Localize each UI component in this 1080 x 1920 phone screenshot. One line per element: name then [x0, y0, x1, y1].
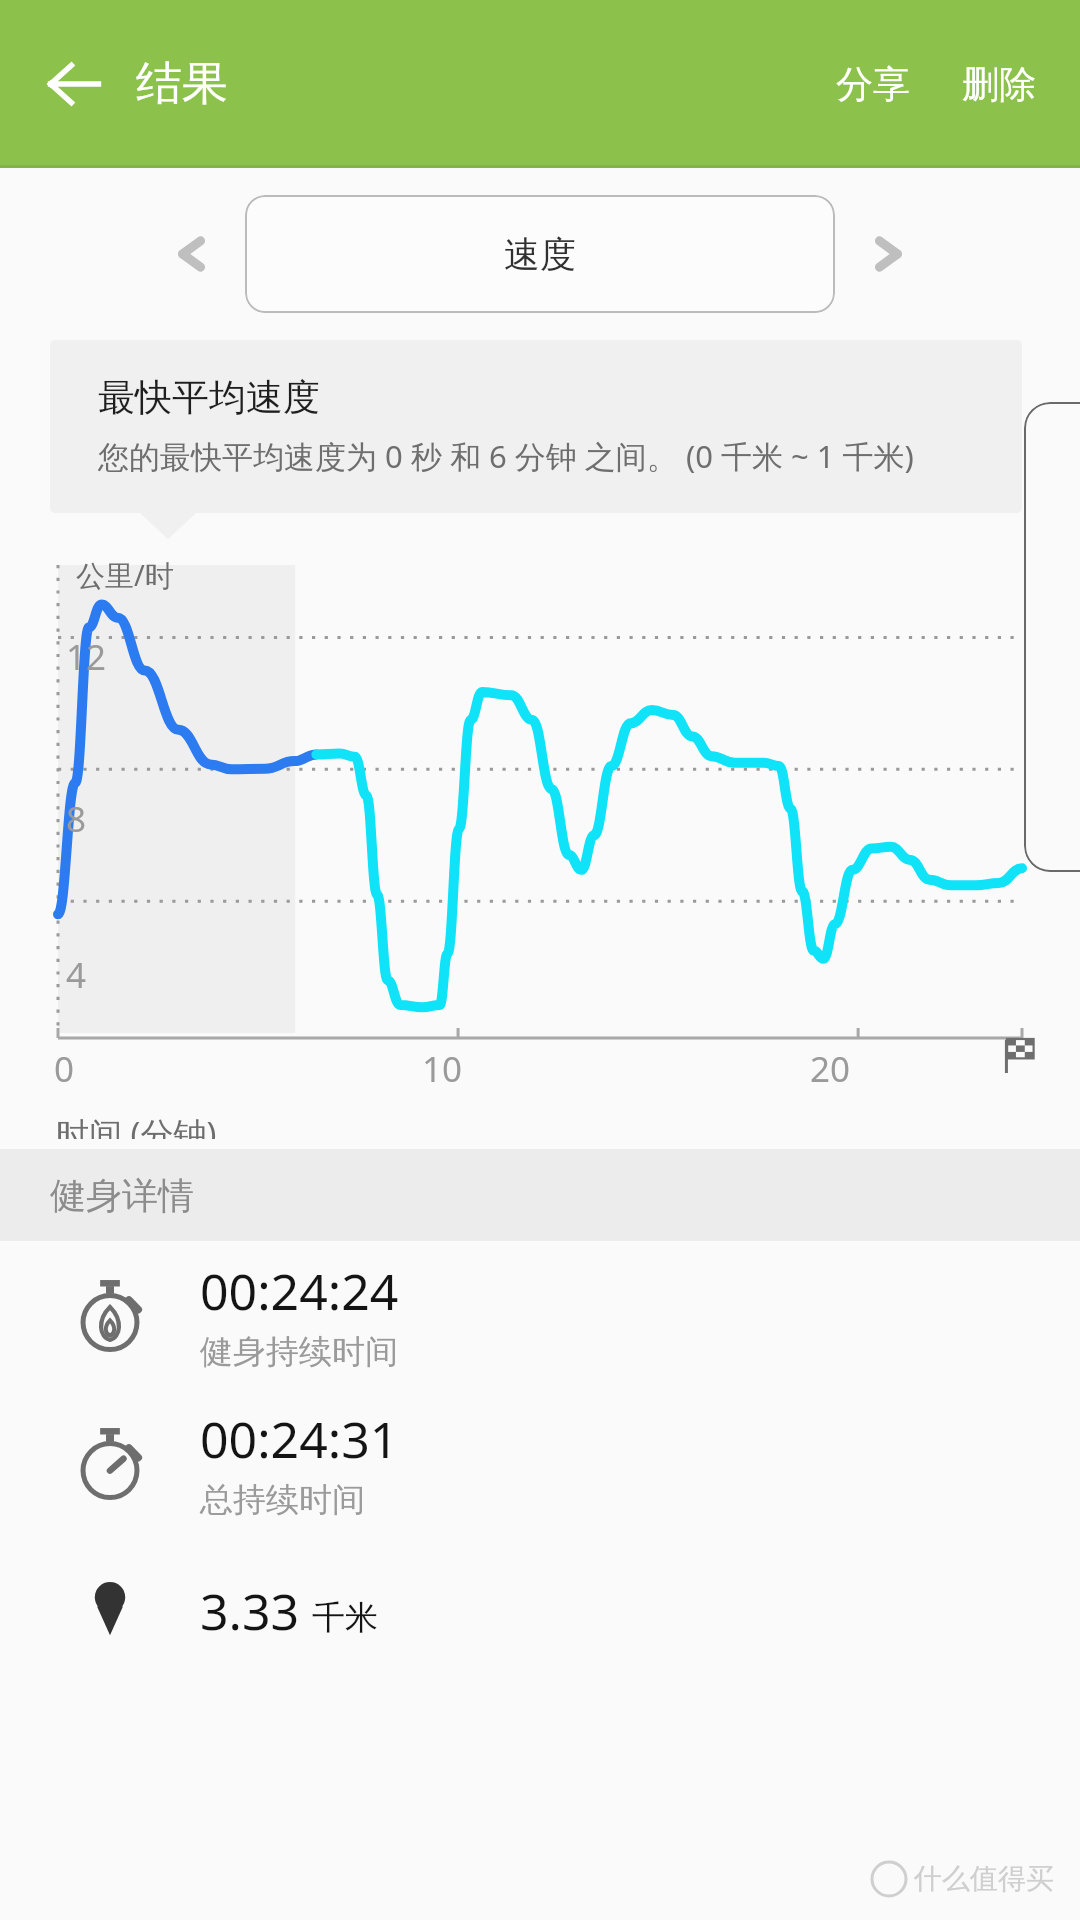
- button[interactable]: 3.33: [0, 1537, 1080, 1685]
- button[interactable]: Previous chart: [152, 216, 228, 292]
- staticText: 千米: [312, 1597, 378, 1639]
- staticText: 00:24:31: [200, 1405, 399, 1473]
- staticText: 健身详情: [50, 1173, 194, 1218]
- staticText: 结果: [136, 55, 228, 113]
- button[interactable]: Next chart: [852, 216, 928, 292]
- staticText: 总持续时间: [200, 1479, 365, 1521]
- button[interactable]: 00:24:31: [0, 1389, 1080, 1537]
- button[interactable]: 分享: [810, 31, 936, 138]
- button[interactable]: 最快平均速度: [50, 340, 1022, 513]
- staticText: 最快平均速度: [98, 374, 320, 421]
- staticText: 8: [66, 795, 87, 843]
- staticText: 分享: [836, 61, 910, 108]
- staticText: 健身持续时间: [200, 1331, 398, 1373]
- staticText: 10: [422, 1045, 463, 1093]
- staticText: 删除: [962, 61, 1036, 108]
- staticText: 00:24:24: [200, 1257, 399, 1325]
- button[interactable]: Back: [26, 36, 122, 132]
- staticText: 您的最快平均速度为 0 秒 和 6 分钟 之间。 (0 千米 ~ 1 千米): [98, 435, 914, 477]
- staticText: 什么值得买: [914, 1861, 1054, 1896]
- button[interactable]: 速度: [245, 195, 835, 313]
- staticText: 公里/时: [76, 555, 174, 595]
- staticText: 时间 (分钟): [56, 1111, 217, 1139]
- staticText: 0: [54, 1045, 75, 1093]
- staticText: 速度: [504, 232, 576, 277]
- staticText: 20: [810, 1045, 851, 1093]
- button[interactable]: 00:24:24: [0, 1241, 1080, 1389]
- staticText: 4: [66, 951, 87, 999]
- staticText: 3.33: [200, 1577, 300, 1645]
- button[interactable]: 删除: [936, 31, 1080, 138]
- staticText: 12: [66, 633, 107, 681]
